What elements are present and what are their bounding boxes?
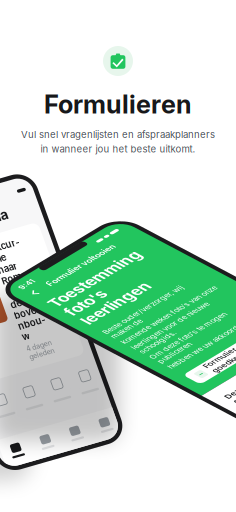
staticText: Formulier voltooien [28, 312, 105, 323]
staticText: leerlingen voor de nieuwe schoolgids. [9, 427, 97, 446]
staticText: hebben we uw akkoord nodig. [9, 469, 113, 478]
staticText: Formulieren [44, 89, 192, 120]
staticText: in wanneer jou het beste uitkomt. [40, 143, 195, 155]
staticText: 9:41 [9, 299, 25, 309]
staticText: leerlingen [9, 368, 84, 386]
staticText: komende weken foto's van onze [9, 416, 118, 425]
staticText: Toestemming foto's [9, 330, 111, 368]
staticText: Om deze foto's te mogen publiceren [9, 448, 96, 466]
staticText: Beste ouder/verzorger, wij maken de [9, 395, 100, 413]
staticText: Vul snel vragenlijsten en afspraakplanne… [21, 129, 215, 140]
